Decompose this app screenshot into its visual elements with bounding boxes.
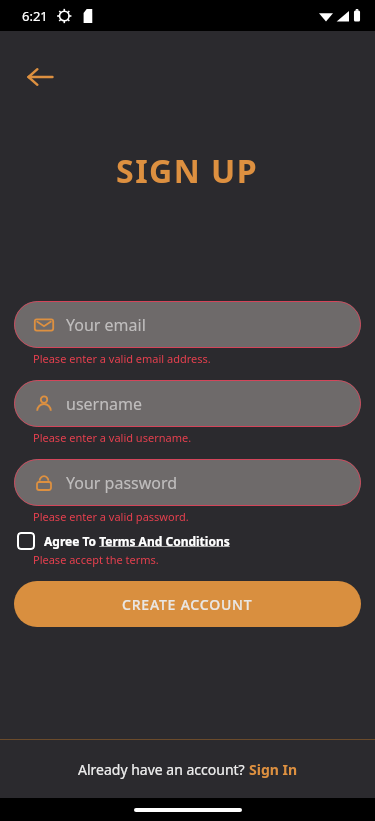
button[interactable]: Back bbox=[18, 55, 62, 99]
other: Agree to terms checkbox bbox=[17, 532, 35, 550]
staticText: Please accept the terms. bbox=[33, 552, 159, 567]
staticText: Please enter a valid username. bbox=[33, 430, 192, 445]
staticText: Agree To Terms And Conditions bbox=[44, 533, 230, 549]
staticText: Sign In bbox=[249, 760, 298, 779]
staticText: 6:21 bbox=[22, 7, 48, 25]
staticText: Your email bbox=[66, 314, 146, 336]
staticText: Already have an account? bbox=[78, 760, 249, 779]
staticText: SIGN UP bbox=[116, 149, 259, 193]
button[interactable]: Already have an account? bbox=[78, 760, 298, 779]
staticText: Please enter a valid password. bbox=[33, 509, 189, 524]
staticText: CREATE ACCOUNT bbox=[122, 595, 253, 614]
staticText: Please enter a valid email address. bbox=[33, 351, 211, 366]
staticText: username bbox=[66, 393, 143, 415]
button[interactable]: username bbox=[14, 380, 361, 427]
button[interactable]: CREATE ACCOUNT bbox=[14, 581, 361, 627]
button[interactable]: Your email bbox=[14, 301, 361, 348]
staticText: Your password bbox=[66, 472, 178, 494]
button[interactable]: Agree to terms checkbox bbox=[17, 532, 230, 550]
button[interactable]: Your password bbox=[14, 459, 361, 506]
